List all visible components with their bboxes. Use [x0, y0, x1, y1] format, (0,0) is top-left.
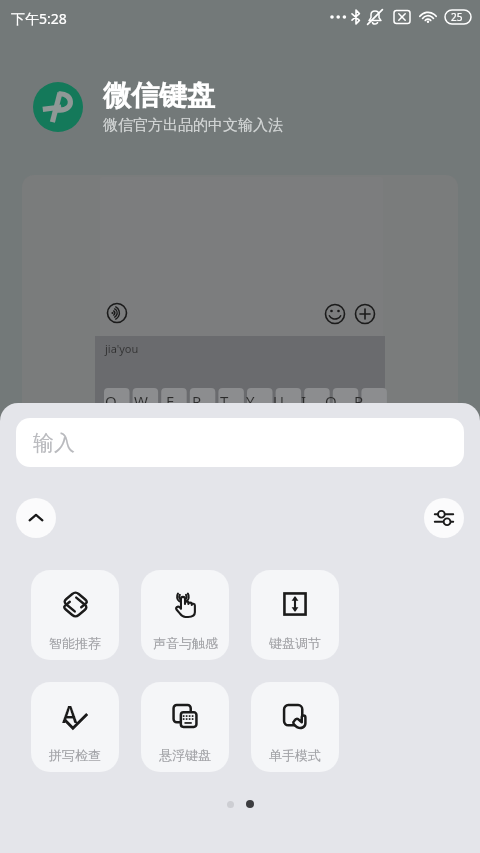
button[interactable]: 键盘调节 [251, 570, 339, 660]
staticText: W [134, 391, 148, 411]
button[interactable]: 声音与触感 [141, 570, 229, 660]
staticText: 输入 [33, 430, 75, 456]
staticText: P [354, 391, 364, 411]
staticText: 声音与触感 [153, 635, 218, 651]
button[interactable]: Settings [424, 498, 464, 538]
staticText: 下午5:28 [11, 9, 67, 28]
staticText: I [301, 391, 307, 411]
staticText: Q [105, 391, 117, 411]
button[interactable]: 智能推荐 [31, 570, 119, 660]
button[interactable]: Collapse [16, 498, 56, 538]
button[interactable]: 单手模式 [251, 682, 339, 772]
staticText: R [192, 391, 202, 411]
staticText: 智能推荐 [49, 635, 101, 651]
staticText: E [166, 391, 175, 411]
staticText: jia'you [105, 341, 139, 356]
staticText: 微信官方出品的中文输入法 [103, 116, 283, 135]
button[interactable]: 悬浮键盘 [141, 682, 229, 772]
staticText: Y [246, 391, 255, 411]
staticText: 悬浮键盘 [159, 747, 211, 763]
button[interactable]: A [31, 682, 119, 772]
staticText: 键盘调节 [269, 635, 321, 651]
staticText: 25 [451, 10, 463, 24]
staticText: 微信键盘 [103, 78, 215, 113]
staticText: O [325, 391, 337, 411]
button[interactable]: 输入 [16, 418, 464, 467]
staticText: A [62, 698, 78, 724]
staticText: T [220, 391, 229, 411]
staticText: 单手模式 [269, 747, 321, 763]
staticText: 拼写检查 [49, 747, 101, 763]
staticText: U [273, 391, 284, 411]
